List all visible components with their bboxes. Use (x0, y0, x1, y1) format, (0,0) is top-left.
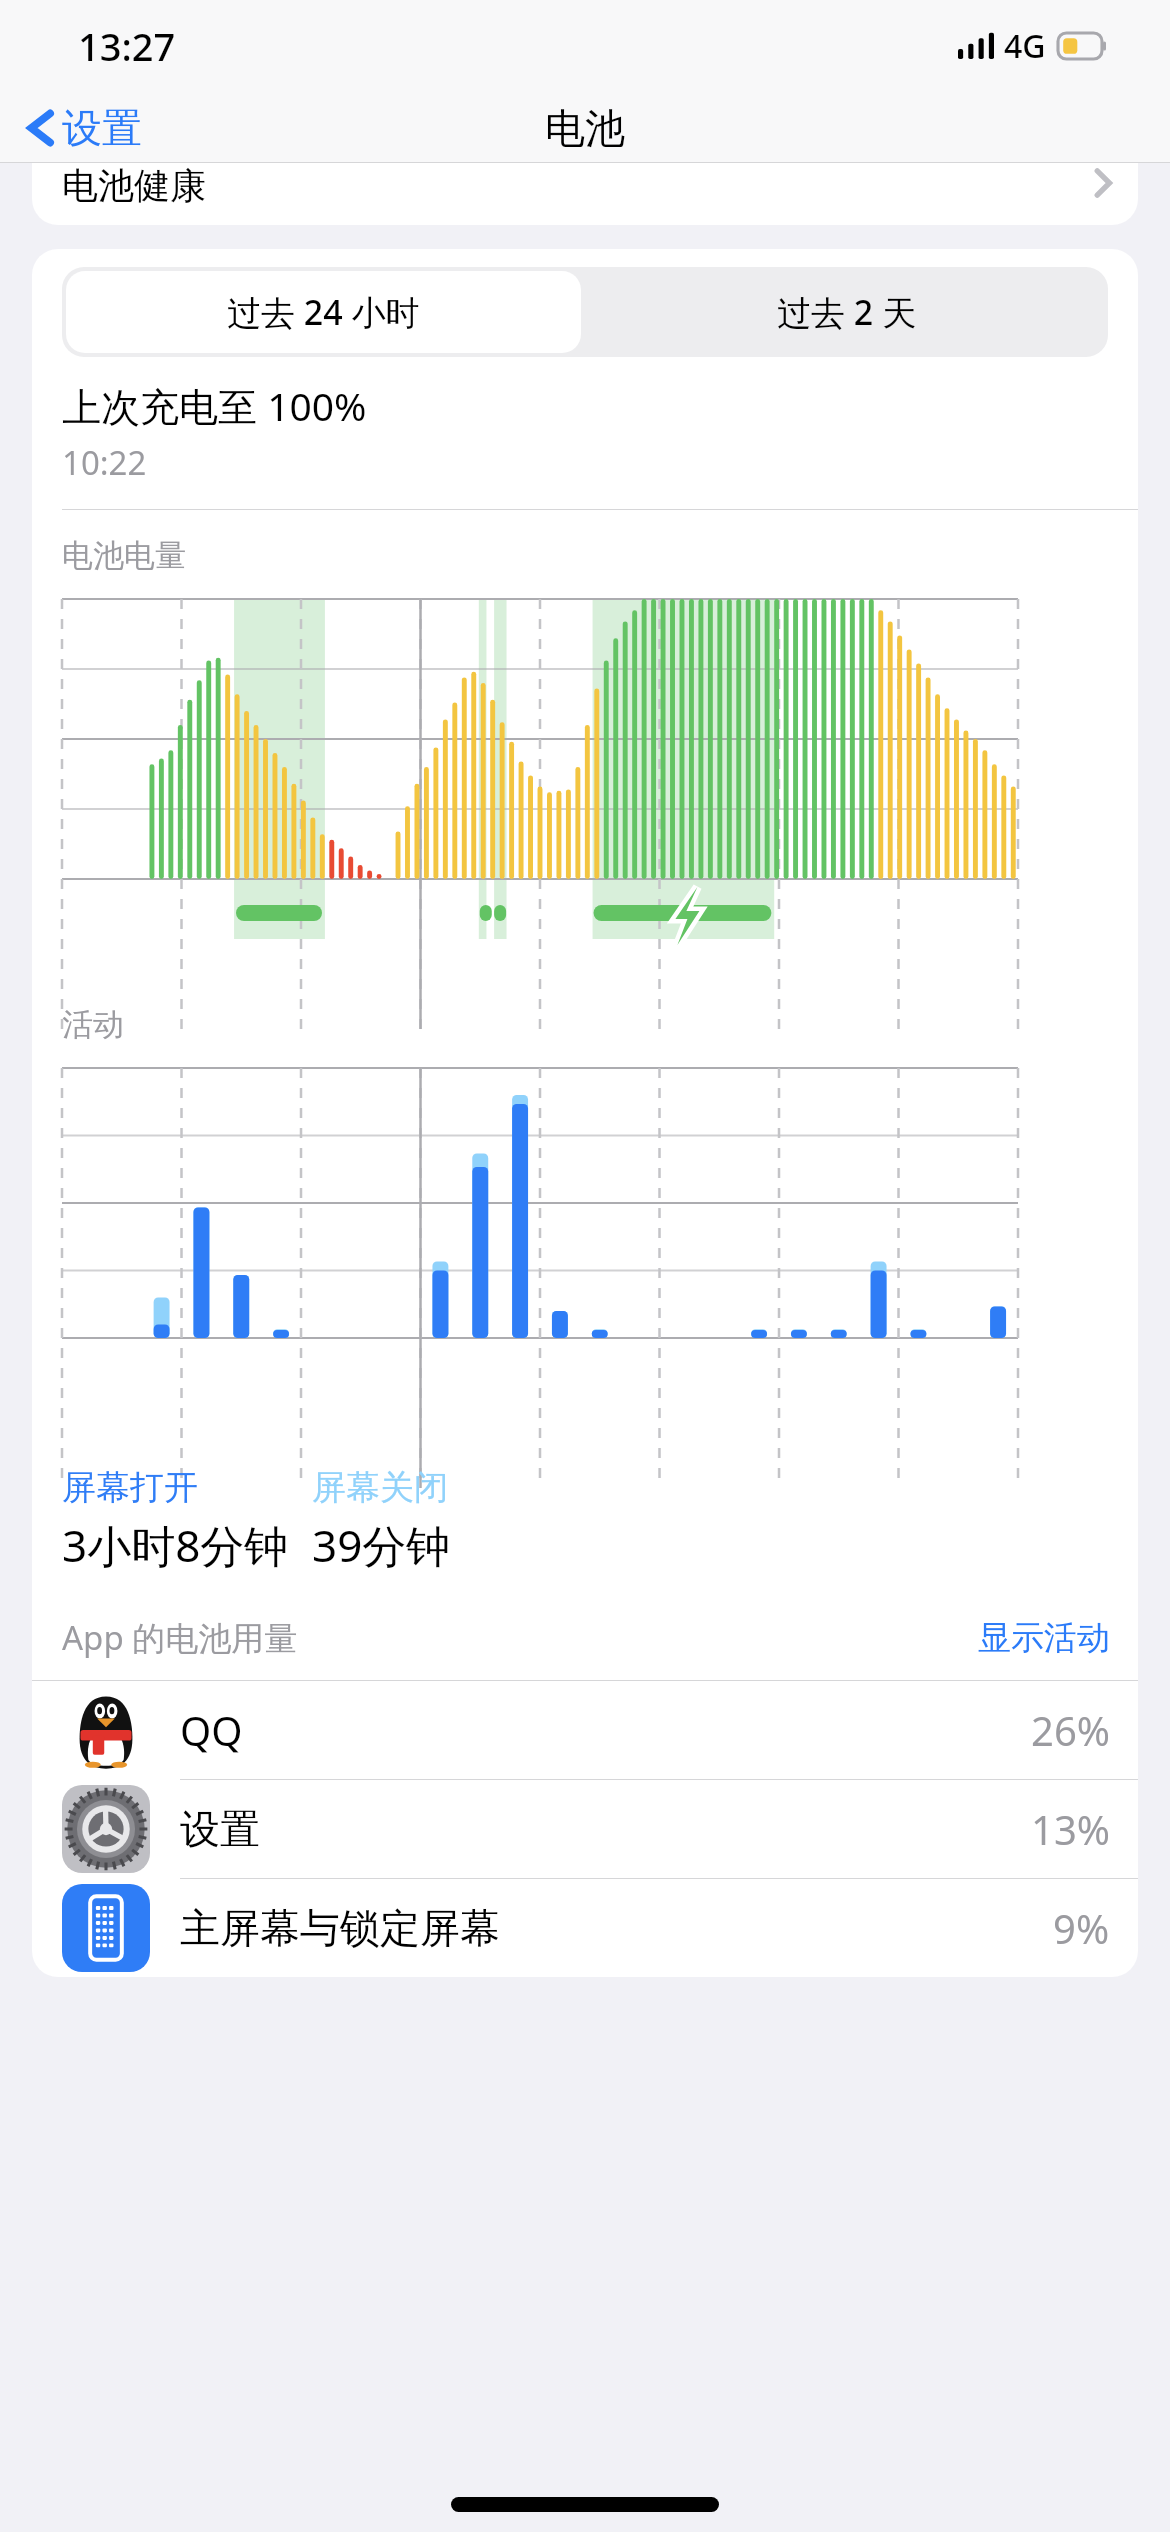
staticText: App 的电池用量 (62, 1615, 298, 1660)
button[interactable]: 过去 2 天 (585, 267, 1108, 357)
staticText: 9% (1053, 1901, 1110, 1955)
staticText: 主屏幕与锁定屏幕 (180, 1903, 500, 1953)
staticText: 过去 24 小时 (227, 289, 420, 335)
button[interactable]: 主屏幕与锁定屏幕 (32, 1879, 1138, 1977)
staticText: 过去 2 天 (777, 289, 917, 335)
staticText: 设置 (180, 1804, 260, 1854)
staticText: 显示活动 (978, 1617, 1110, 1659)
staticText: QQ (180, 1703, 243, 1757)
staticText: 4G (1004, 24, 1046, 68)
staticText: 屏幕关闭 (312, 1466, 448, 1509)
staticText: 39分钟 (312, 1515, 451, 1575)
staticText: 电池健康 (62, 163, 206, 208)
staticText: 3小时8分钟 (62, 1515, 289, 1575)
staticText: 26% (1031, 1703, 1110, 1757)
staticText: 屏幕打开 (62, 1466, 198, 1509)
staticText: 设置 (62, 103, 142, 153)
staticText: 上次充电至 100% (62, 379, 367, 432)
button[interactable]: 设置 (22, 97, 148, 159)
staticText: 活动 (62, 1005, 124, 1044)
staticText: 13:27 (78, 20, 176, 72)
button[interactable]: 设置 (32, 1780, 1138, 1878)
staticText: 电池电量 (62, 536, 186, 575)
button[interactable]: 过去 24 小时 (66, 271, 581, 353)
staticText: 13% (1031, 1802, 1110, 1856)
staticText: 电池 (545, 103, 625, 153)
staticText: 10:22 (62, 440, 147, 485)
button[interactable]: 显示活动 (978, 1617, 1110, 1659)
button[interactable]: QQ (32, 1681, 1138, 1779)
button[interactable]: 电池健康 (32, 163, 1138, 225)
